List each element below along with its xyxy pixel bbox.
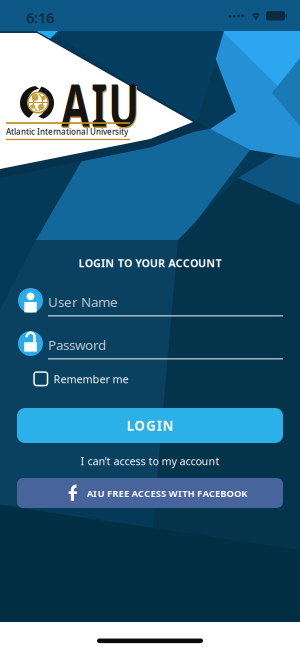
staticText: LOGIN <box>126 417 174 434</box>
button[interactable]: I can't access to my account <box>80 454 219 468</box>
staticText: AIU <box>43 63 157 143</box>
staticText: 6:16 <box>26 8 54 27</box>
button[interactable]: User Name <box>17 283 283 319</box>
button[interactable]: AIU FREE ACCESS WITH FACEBOOK <box>17 478 283 508</box>
staticText: I can't access to my account <box>80 454 219 468</box>
staticText: Remember me <box>53 372 128 386</box>
staticText: User Name <box>48 293 118 311</box>
button[interactable]: LOGIN <box>17 408 283 443</box>
staticText: AIU FREE ACCESS WITH FACEBOOK <box>87 487 247 500</box>
staticText: AIU <box>45 65 159 144</box>
button[interactable]: Remember me <box>33 370 143 387</box>
staticText: LOGIN TO YOUR ACCOUNT <box>78 256 221 270</box>
staticText: Password <box>48 336 106 354</box>
button[interactable]: Password <box>17 326 283 362</box>
staticText: Atlantic International University <box>6 126 128 137</box>
